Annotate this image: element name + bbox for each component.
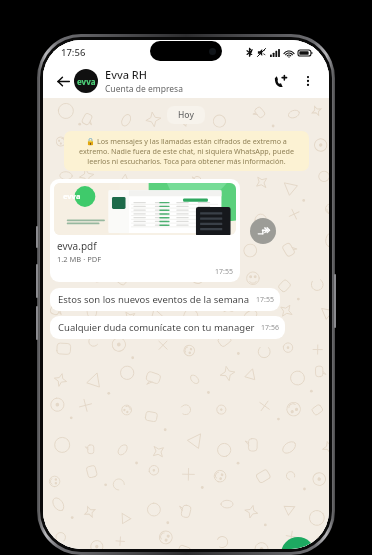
staticText: 🔒 Los mensajes y las llamadas están cifr… xyxy=(73,136,300,166)
button[interactable]: Estos son los nuevos eventos de la seman… xyxy=(50,288,280,311)
staticText: 1.2 MB · PDF xyxy=(57,254,102,264)
staticText: evva.pdf xyxy=(57,239,97,253)
staticText: Cuenta de empresa xyxy=(105,83,183,95)
button[interactable]: Cualquier duda comunícate con tu manager xyxy=(50,316,285,339)
button[interactable]: Hoy xyxy=(178,109,194,121)
button[interactable]: More options xyxy=(297,70,319,92)
button[interactable]: 🔒 Los mensajes y las llamadas están cifr… xyxy=(64,131,309,171)
button[interactable]: Back xyxy=(53,71,73,91)
button[interactable]: Call xyxy=(269,69,293,93)
staticText: 17:56 xyxy=(61,46,86,59)
staticText: 17:55 xyxy=(215,267,233,277)
button[interactable]: Send xyxy=(281,537,315,549)
staticText: 17:56 xyxy=(261,323,279,333)
staticText: evva xyxy=(63,191,81,201)
button[interactable]: Evva RH xyxy=(105,67,269,95)
staticText: Evva RH xyxy=(105,67,148,82)
button[interactable]: evva xyxy=(74,69,98,93)
button[interactable]: Forward xyxy=(250,218,276,244)
button[interactable]: evva xyxy=(50,179,240,282)
staticText: evva xyxy=(77,76,96,87)
staticText: Hoy xyxy=(178,109,194,121)
staticText: Estos son los nuevos eventos de la seman… xyxy=(58,293,250,306)
staticText: Cualquier duda comunícate con tu manager xyxy=(58,321,255,334)
staticText: 17:55 xyxy=(256,295,274,305)
